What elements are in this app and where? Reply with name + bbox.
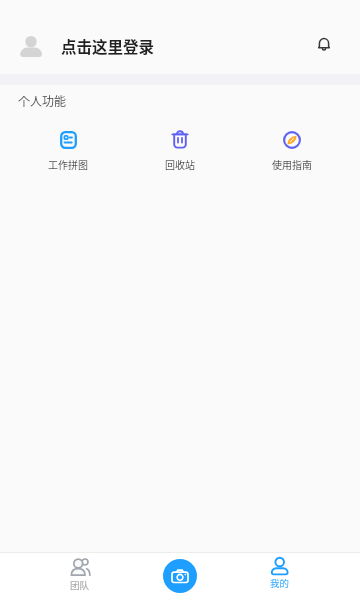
button[interactable]: 团队	[50, 556, 110, 600]
button[interactable]: 工作拼图	[28, 129, 108, 171]
button[interactable]: 点击这里登录	[0, 0, 360, 74]
staticText: 团队	[70, 578, 90, 592]
staticText: 使用指南	[272, 157, 312, 171]
staticText: 我的	[270, 576, 290, 590]
button[interactable]: 我的	[250, 556, 310, 600]
button[interactable]: 使用指南	[252, 129, 332, 171]
staticText: 点击这里登录	[61, 35, 155, 57]
staticText: 工作拼图	[48, 157, 88, 171]
button[interactable]	[163, 559, 197, 593]
staticText: 个人功能	[18, 92, 67, 109]
button[interactable]: 回收站	[140, 129, 220, 171]
staticText: 回收站	[165, 157, 195, 171]
button[interactable]	[310, 30, 338, 58]
